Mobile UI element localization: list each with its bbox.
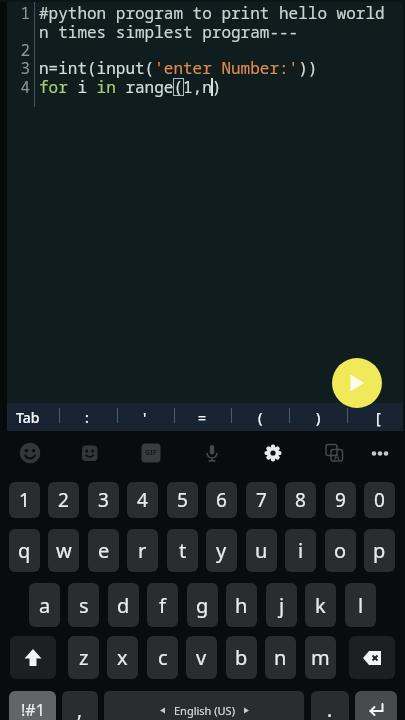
staticText: A xyxy=(334,451,340,462)
staticText: GIF xyxy=(145,448,157,458)
staticText: r xyxy=(138,537,147,564)
button[interactable]: A xyxy=(318,437,350,469)
button[interactable]: . xyxy=(311,691,349,720)
button[interactable] xyxy=(10,636,56,679)
button[interactable]: x xyxy=(107,636,138,679)
button[interactable] xyxy=(196,437,228,469)
button[interactable] xyxy=(332,358,382,408)
staticText: 4 xyxy=(137,487,148,513)
button[interactable]: ' xyxy=(123,403,167,431)
staticText: , xyxy=(77,697,83,720)
button[interactable]: 7 xyxy=(246,482,277,518)
staticText: ' xyxy=(143,408,147,427)
button[interactable]: ) xyxy=(296,403,340,431)
button[interactable] xyxy=(364,437,396,469)
staticText: 4 xyxy=(0,76,30,98)
staticText: 9 xyxy=(335,487,346,513)
staticText: ( xyxy=(258,408,263,427)
staticText: z xyxy=(79,644,89,671)
button[interactable]: Tab xyxy=(6,403,50,431)
button[interactable]: 1 xyxy=(9,482,40,518)
button[interactable]: o xyxy=(325,529,356,572)
button[interactable]: p xyxy=(364,529,395,572)
button[interactable]: l xyxy=(345,583,376,627)
staticText: o xyxy=(334,537,347,564)
button[interactable]: n xyxy=(265,636,296,679)
staticText: 2 xyxy=(0,39,30,61)
button[interactable]: s xyxy=(68,583,99,627)
button[interactable]: 8 xyxy=(285,482,316,518)
button[interactable]: w xyxy=(48,529,79,572)
button[interactable]: 2 xyxy=(48,482,79,518)
button[interactable]: g xyxy=(187,583,218,627)
staticText: 6 xyxy=(216,487,227,513)
button[interactable]: ( xyxy=(238,403,282,431)
button[interactable] xyxy=(349,636,395,679)
staticText: x xyxy=(117,644,128,671)
button[interactable]: [ xyxy=(356,403,400,431)
button[interactable]: z xyxy=(68,636,99,679)
staticText: e xyxy=(98,537,110,564)
staticText: 3 xyxy=(0,57,30,79)
staticText: 5 xyxy=(177,487,188,513)
staticText: [ xyxy=(376,408,381,427)
staticText: 0 xyxy=(374,487,385,513)
staticText: #python program to print hello world xyxy=(39,2,385,24)
staticText: 2 xyxy=(58,487,69,513)
button[interactable] xyxy=(74,437,106,469)
staticText: 3 xyxy=(98,487,109,513)
button[interactable]: : xyxy=(65,403,109,431)
staticText: Tab xyxy=(16,408,40,427)
staticText: a xyxy=(39,592,51,619)
button[interactable]: d xyxy=(108,583,139,627)
button[interactable]: b xyxy=(226,636,257,679)
button[interactable]: h xyxy=(226,583,257,627)
staticText: b xyxy=(235,644,248,671)
staticText: f xyxy=(159,592,166,619)
button[interactable]: c xyxy=(147,636,178,679)
staticText: u xyxy=(255,537,268,564)
button[interactable]: e xyxy=(88,529,119,572)
button[interactable]: u xyxy=(246,529,277,572)
button[interactable]: f xyxy=(147,583,178,627)
button[interactable]: !#1 xyxy=(9,691,56,720)
button[interactable] xyxy=(14,437,46,469)
button[interactable]: 3 xyxy=(88,482,119,518)
staticText: g xyxy=(196,592,209,619)
button[interactable]: i xyxy=(285,529,316,572)
button[interactable] xyxy=(257,437,289,469)
button[interactable]: GIF xyxy=(135,437,167,469)
staticText: q xyxy=(18,537,31,564)
button[interactable]: j xyxy=(266,583,297,627)
button[interactable]: English (US) xyxy=(104,691,304,720)
staticText: c xyxy=(158,644,168,671)
button[interactable]: q xyxy=(9,529,40,572)
button[interactable]: 0 xyxy=(364,482,395,518)
staticText: n=int(input('enter Number:')) xyxy=(39,57,318,79)
button[interactable]: 6 xyxy=(206,482,237,518)
staticText: 1 xyxy=(0,2,30,24)
button[interactable]: r xyxy=(127,529,158,572)
button[interactable]: t xyxy=(167,529,198,572)
button[interactable]: 4 xyxy=(127,482,158,518)
staticText: h xyxy=(235,592,248,619)
button[interactable]: m xyxy=(305,636,336,679)
button[interactable]: v xyxy=(186,636,217,679)
button[interactable]: 9 xyxy=(325,482,356,518)
staticText: w xyxy=(56,537,72,564)
button[interactable]: , xyxy=(62,691,98,720)
button[interactable]: a xyxy=(29,583,60,627)
staticText: s xyxy=(79,592,89,619)
button[interactable]: = xyxy=(180,403,224,431)
staticText: English (US) xyxy=(174,703,235,718)
button[interactable]: y xyxy=(206,529,237,572)
staticText: l xyxy=(358,592,364,619)
button[interactable]: k xyxy=(305,583,336,627)
button[interactable] xyxy=(355,691,397,720)
staticText: p xyxy=(373,537,386,564)
staticText: m xyxy=(311,644,330,671)
staticText: for i in range(1,n) xyxy=(39,76,222,98)
staticText: t xyxy=(179,537,187,564)
staticText: v xyxy=(196,644,207,671)
button[interactable]: 5 xyxy=(167,482,198,518)
